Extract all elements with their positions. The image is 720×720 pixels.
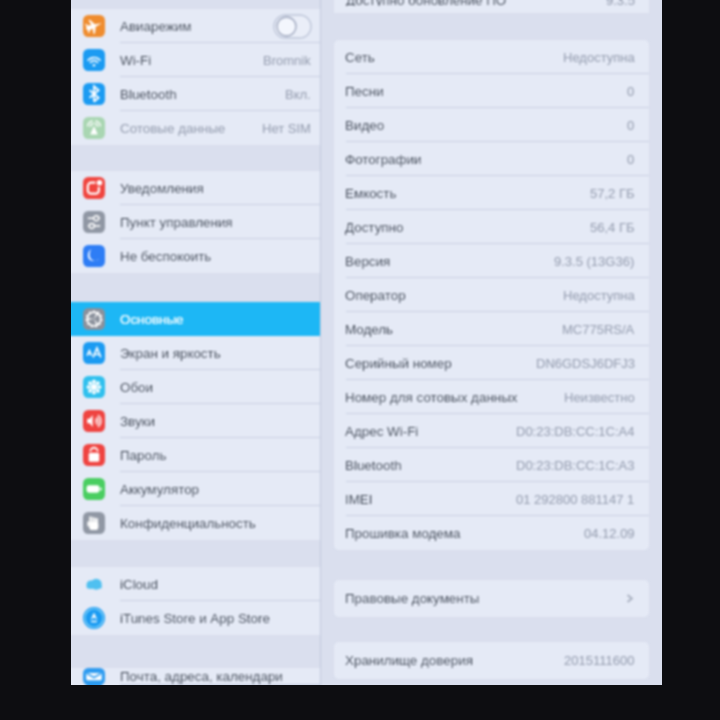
button[interactable]: Доступно: [334, 210, 649, 244]
button[interactable]: Модель: [334, 312, 649, 346]
staticText: Звуки: [120, 414, 311, 429]
button[interactable]: Wi-Fi: [71, 43, 320, 77]
button[interactable]: Авиарежим: [71, 9, 320, 43]
staticText: Доступно обновление ПО: [346, 0, 606, 6]
staticText: Сеть: [345, 50, 563, 65]
button[interactable]: Bluetooth: [334, 448, 649, 482]
staticText: Пункт управления: [120, 215, 311, 230]
button[interactable]: Номер для сотовых данных: [334, 380, 649, 414]
button[interactable]: Обои: [71, 370, 320, 404]
staticText: 04.12.09: [584, 526, 635, 541]
staticText: Основные: [120, 312, 311, 327]
staticText: Сотовые данные: [120, 121, 262, 136]
staticText: 56,4 ГБ: [590, 220, 635, 235]
staticText: 2015111600: [564, 653, 635, 668]
staticText: Экран и яркость: [120, 346, 311, 361]
button[interactable]: Уведомления: [71, 171, 320, 205]
staticText: Почта, адреса, календари: [120, 669, 311, 684]
staticText: 0: [627, 152, 635, 167]
button[interactable]: Версия: [334, 244, 649, 278]
staticText: Прошивка модема: [345, 526, 584, 541]
staticText: Аккумулятор: [120, 482, 311, 497]
staticText: MC775RS/A: [562, 322, 635, 337]
staticText: Хранилище доверия: [345, 653, 564, 668]
button[interactable]: Адрес Wi-Fi: [334, 414, 649, 448]
staticText: 0: [627, 84, 635, 99]
button[interactable]: IMEI: [334, 482, 649, 516]
staticText: Адрес Wi-Fi: [345, 424, 516, 439]
button[interactable]: Песни: [334, 74, 649, 108]
staticText: D0:23:DB:CC:1C:A4: [516, 424, 635, 439]
button[interactable]: Звуки: [71, 404, 320, 438]
staticText: Wi-Fi: [120, 53, 263, 68]
staticText: Недоступна: [563, 50, 635, 65]
staticText: DN6GDSJ6DFJ3: [536, 356, 635, 371]
staticText: Доступно: [345, 220, 590, 235]
staticText: Оператор: [345, 288, 563, 303]
button[interactable]: Правовые документы: [334, 580, 649, 617]
staticText: 57,2 ГБ: [590, 186, 635, 201]
staticText: D0:23:DB:CC:1C:A3: [516, 458, 635, 473]
button[interactable]: Хранилище доверия: [334, 642, 649, 679]
staticText: Неизвестно: [564, 390, 635, 405]
button[interactable]: iTunes Store и App Store: [71, 601, 320, 635]
staticText: Серийный номер: [345, 356, 536, 371]
staticText: iTunes Store и App Store: [120, 611, 311, 626]
staticText: 01 292800 881147 1: [516, 492, 635, 507]
staticText: Емкость: [345, 186, 590, 201]
staticText: Видео: [345, 118, 627, 133]
button[interactable]: Оператор: [334, 278, 649, 312]
button[interactable]: Прошивка модема: [334, 516, 649, 550]
button[interactable]: Основные: [71, 302, 320, 336]
staticText: Фотографии: [345, 152, 627, 167]
button[interactable]: Не беспокоить: [71, 239, 320, 273]
staticText: Правовые документы: [345, 591, 624, 606]
staticText: Версия: [345, 254, 554, 269]
button[interactable]: Фотографии: [334, 142, 649, 176]
staticText: Пароль: [120, 448, 311, 463]
button[interactable]: Аккумулятор: [71, 472, 320, 506]
staticText: 9.3.5: [606, 0, 635, 6]
staticText: Песни: [345, 84, 627, 99]
staticText: Уведомления: [120, 181, 311, 196]
staticText: Обои: [120, 380, 311, 395]
staticText: Недоступна: [563, 288, 635, 303]
staticText: Авиарежим: [120, 19, 274, 34]
staticText: IMEI: [345, 492, 516, 507]
button[interactable]: Сеть: [334, 40, 649, 74]
staticText: Bluetooth: [120, 87, 285, 102]
button[interactable]: iCloud: [71, 567, 320, 601]
staticText: Модель: [345, 322, 562, 337]
button[interactable]: Доступно обновление ПО: [334, 0, 649, 13]
button[interactable]: Пункт управления: [71, 205, 320, 239]
staticText: Bromnik: [263, 53, 311, 68]
staticText: Вкл.: [285, 87, 311, 102]
staticText: 0: [627, 118, 635, 133]
button[interactable]: Экран и яркость: [71, 336, 320, 370]
staticText: Нет SIM: [262, 121, 311, 136]
button[interactable]: Пароль: [71, 438, 320, 472]
staticText: iCloud: [120, 577, 311, 592]
staticText: Не беспокоить: [120, 249, 311, 264]
button[interactable]: Конфиденциальность: [71, 506, 320, 540]
button[interactable]: Серийный номер: [334, 346, 649, 380]
button[interactable]: Bluetooth: [71, 77, 320, 111]
staticText: 9.3.5 (13G36): [554, 254, 635, 269]
button[interactable]: Сотовые данные: [71, 111, 320, 145]
button[interactable]: Почта, адреса, календари: [71, 668, 320, 685]
staticText: Bluetooth: [345, 458, 516, 473]
button[interactable]: Видео: [334, 108, 649, 142]
staticText: Номер для сотовых данных: [345, 390, 564, 405]
staticText: Конфиденциальность: [120, 516, 311, 531]
button[interactable]: Емкость: [334, 176, 649, 210]
